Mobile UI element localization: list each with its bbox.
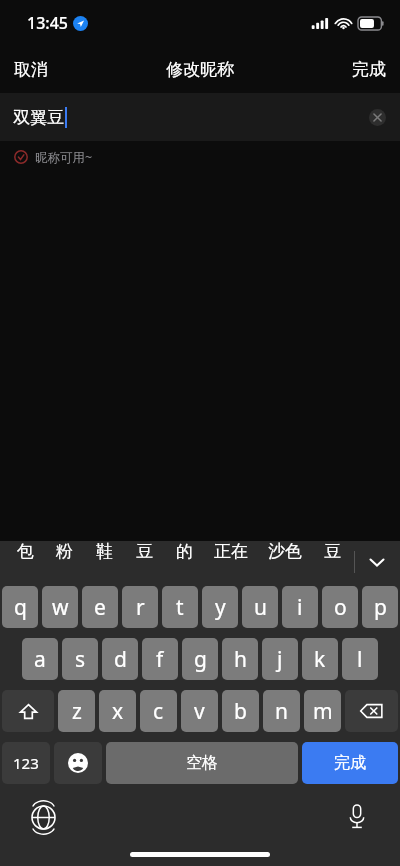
button[interactable]: d <box>102 638 138 680</box>
staticText: p <box>374 593 387 622</box>
staticText: 正在 <box>214 541 248 562</box>
staticText: x <box>112 697 124 726</box>
staticText: 昵称可用~ <box>35 149 93 166</box>
button[interactable]: s <box>62 638 98 680</box>
button[interactable]: r <box>122 586 158 628</box>
button[interactable]: k <box>302 638 338 680</box>
button[interactable]: 鞋 <box>84 541 124 562</box>
button[interactable]: w <box>42 586 78 628</box>
staticText: 空格 <box>186 753 218 773</box>
button[interactable]: 粉 <box>45 541 84 562</box>
button[interactable]: 完成 <box>302 742 398 784</box>
staticText: l <box>357 645 363 674</box>
button[interactable]: n <box>263 690 300 732</box>
button[interactable]: f <box>142 638 178 680</box>
staticText: 双翼豆 <box>13 107 64 128</box>
staticText: z <box>72 697 82 726</box>
button[interactable]: Clear text <box>362 102 392 132</box>
button[interactable]: g <box>182 638 218 680</box>
button[interactable]: i <box>282 586 318 628</box>
staticText: f <box>156 645 164 674</box>
staticText: g <box>194 645 207 674</box>
button[interactable]: q <box>2 586 38 628</box>
staticText: k <box>314 645 326 674</box>
button[interactable]: 豆 <box>124 541 164 562</box>
button[interactable]: 正在 <box>204 541 258 562</box>
staticText: c <box>153 697 164 726</box>
button[interactable]: c <box>140 690 177 732</box>
button[interactable]: p <box>362 586 398 628</box>
button[interactable]: t <box>162 586 198 628</box>
staticText: o <box>334 593 347 622</box>
staticText: 鞋 <box>96 541 113 562</box>
button[interactable]: 的 <box>164 541 204 562</box>
staticText: r <box>136 593 145 622</box>
button[interactable]: o <box>322 586 358 628</box>
staticText: 的 <box>176 541 193 562</box>
staticText: 豆 <box>136 541 153 562</box>
staticText: 修改昵称 <box>166 59 234 80</box>
staticText: 粉 <box>56 541 73 562</box>
button[interactable]: e <box>82 586 118 628</box>
button[interactable]: b <box>222 690 259 732</box>
staticText: q <box>14 593 27 622</box>
staticText: d <box>114 645 127 674</box>
staticText: w <box>52 593 69 622</box>
staticText: 取消 <box>14 59 48 80</box>
button[interactable]: x <box>99 690 136 732</box>
staticText: h <box>234 645 247 674</box>
staticText: 豆 <box>324 541 341 562</box>
button[interactable]: z <box>58 690 95 732</box>
staticText: 包 <box>17 541 34 562</box>
staticText: j <box>277 645 283 674</box>
button[interactable]: y <box>202 586 238 628</box>
staticText: 沙色 <box>268 541 302 562</box>
button[interactable]: 包 <box>6 541 45 562</box>
staticText: 完成 <box>352 59 386 80</box>
staticText: y <box>215 593 226 622</box>
staticText: 完成 <box>334 753 366 773</box>
button[interactable]: m <box>304 690 341 732</box>
button[interactable]: 取消 <box>0 50 62 89</box>
button[interactable]: 沙色 <box>258 541 312 562</box>
button[interactable]: Emoji <box>54 742 102 784</box>
staticText: i <box>297 593 303 622</box>
button[interactable]: 空格 <box>106 742 298 784</box>
button[interactable]: Voice input <box>338 798 376 836</box>
staticText: u <box>254 593 267 622</box>
staticText: a <box>34 645 46 674</box>
staticText: 13:45 <box>27 12 68 34</box>
button[interactable]: u <box>242 586 278 628</box>
button[interactable]: Backspace <box>345 690 398 732</box>
button[interactable]: Collapse suggestions <box>358 543 396 581</box>
staticText: e <box>94 593 106 622</box>
button[interactable]: 豆 <box>312 541 352 562</box>
staticText: m <box>313 697 333 726</box>
button[interactable]: 123 <box>2 742 50 784</box>
button[interactable]: Shift <box>2 690 54 732</box>
staticText: t <box>176 593 184 622</box>
staticText: 123 <box>13 753 39 773</box>
button[interactable]: j <box>262 638 298 680</box>
staticText: b <box>234 697 247 726</box>
button[interactable]: h <box>222 638 258 680</box>
button[interactable]: 完成 <box>338 50 400 89</box>
button[interactable]: a <box>22 638 58 680</box>
button[interactable]: v <box>181 690 218 732</box>
staticText: s <box>75 645 86 674</box>
staticText: v <box>194 697 205 726</box>
button[interactable]: l <box>342 638 378 680</box>
staticText: n <box>275 697 288 726</box>
button[interactable]: Change keyboard language <box>24 798 62 836</box>
